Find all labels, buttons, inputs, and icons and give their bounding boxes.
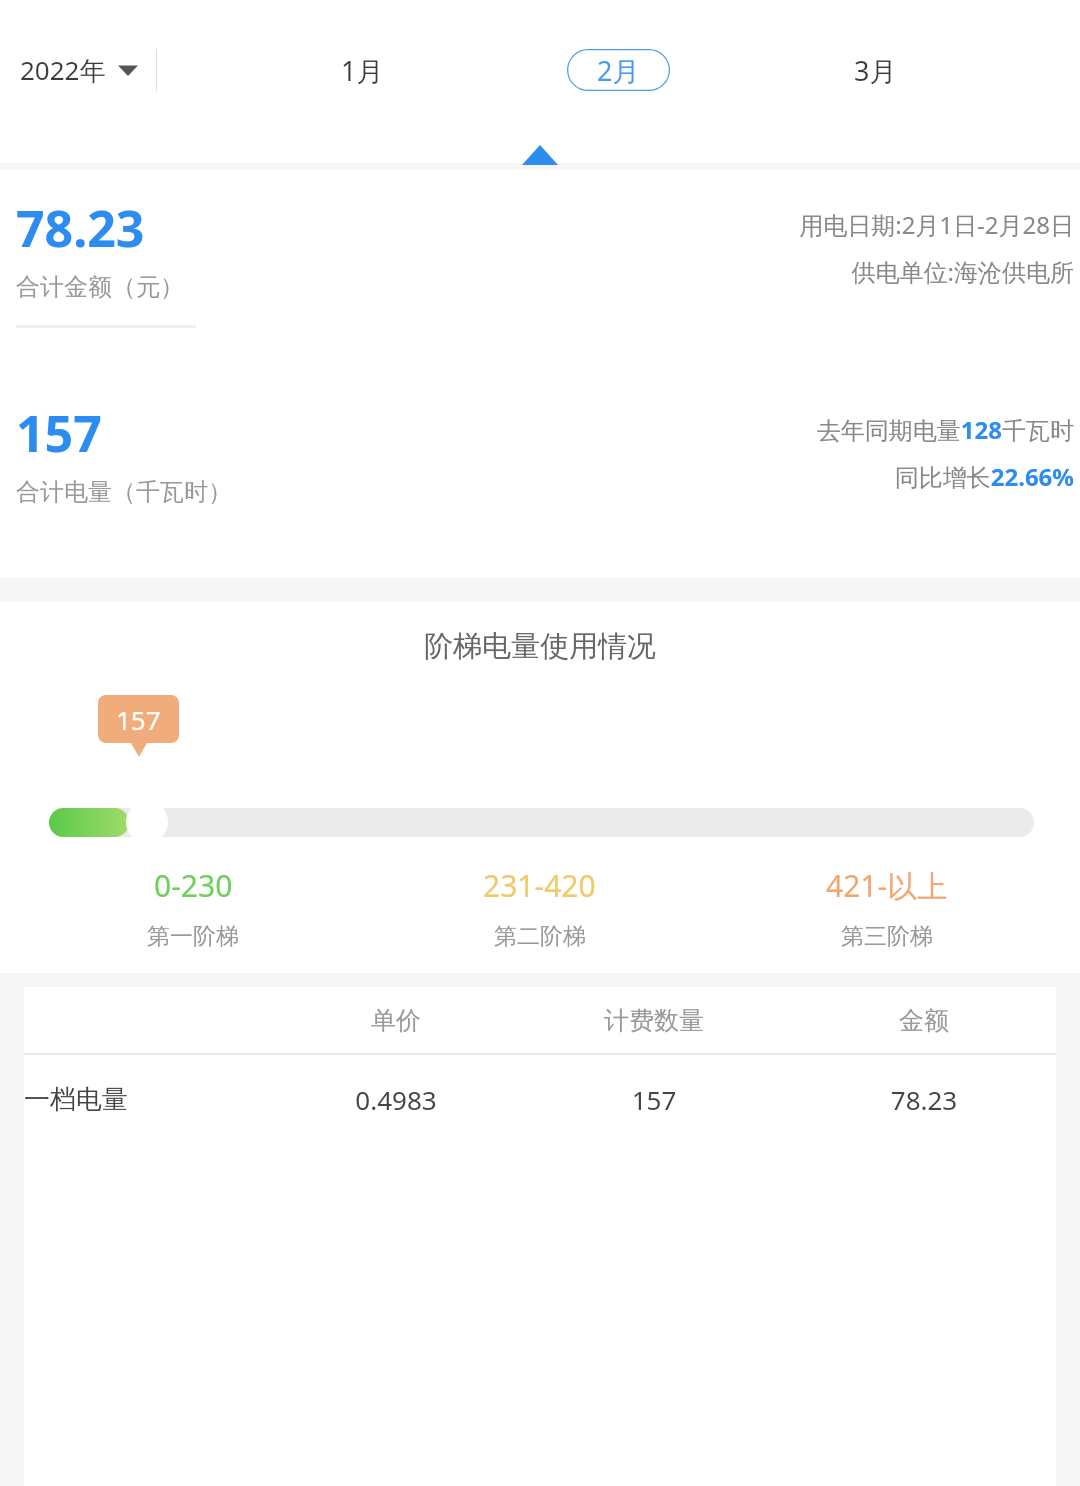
staticText: 1月 bbox=[341, 52, 384, 89]
staticText: 78.23 bbox=[16, 194, 145, 262]
button[interactable]: 2022年 bbox=[16, 44, 142, 96]
staticText: 阶梯电量使用情况 bbox=[0, 628, 1080, 665]
button[interactable]: 1月 bbox=[311, 49, 414, 91]
button[interactable] bbox=[126, 801, 168, 843]
staticText: 2月 bbox=[597, 52, 640, 89]
staticText: 157 bbox=[516, 1082, 792, 1117]
staticText: 157 bbox=[116, 702, 161, 737]
staticText: 2022年 bbox=[20, 52, 106, 88]
staticText: 同比增长22.66% bbox=[894, 460, 1074, 493]
staticText: 计费数量 bbox=[516, 1005, 792, 1036]
button[interactable]: 2月 bbox=[567, 49, 670, 91]
staticText: 去年同期电量128千瓦时 bbox=[816, 413, 1074, 446]
staticText: 合计电量（千瓦时） bbox=[16, 477, 232, 507]
staticText: 合计金额（元） bbox=[16, 272, 184, 302]
button[interactable]: 3月 bbox=[824, 49, 927, 91]
staticText: 一档电量 bbox=[24, 1083, 276, 1116]
staticText: 金额 bbox=[792, 1005, 1056, 1036]
staticText: 78.23 bbox=[792, 1082, 1056, 1117]
staticText: 第一阶梯 bbox=[147, 922, 239, 951]
staticText: 用电日期:2月1日-2月28日 bbox=[799, 208, 1074, 241]
staticText: 421-以上 bbox=[826, 865, 948, 906]
staticText: 第三阶梯 bbox=[841, 922, 933, 951]
staticText: 供电单位:海沧供电所 bbox=[851, 255, 1074, 288]
staticText: 0-230 bbox=[154, 865, 233, 906]
staticText: 157 bbox=[16, 399, 102, 467]
staticText: 231-420 bbox=[483, 865, 596, 906]
staticText: 3月 bbox=[854, 52, 897, 89]
staticText: 单价 bbox=[276, 1005, 516, 1036]
staticText: 第二阶梯 bbox=[494, 922, 586, 951]
staticText: 0.4983 bbox=[276, 1082, 516, 1117]
